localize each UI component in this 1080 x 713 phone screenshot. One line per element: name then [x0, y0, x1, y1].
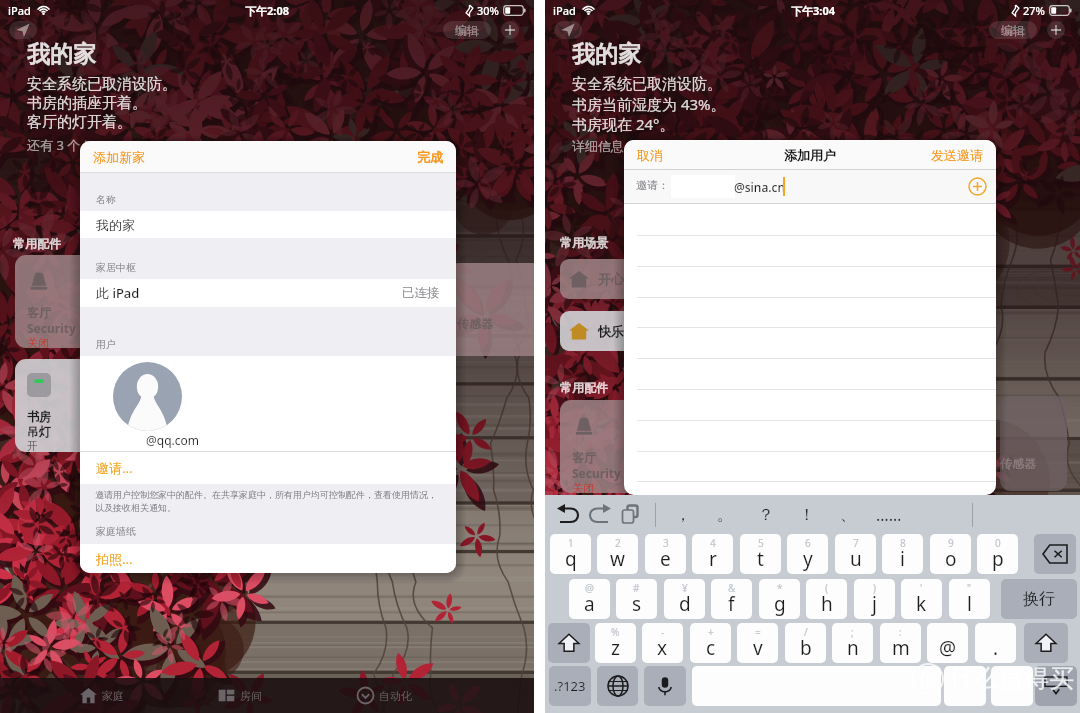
button[interactable]: ) [854, 579, 895, 619]
button[interactable]: ' [901, 579, 942, 619]
staticText: y [803, 546, 813, 572]
staticText: a [584, 591, 595, 617]
staticText: 房间 [240, 689, 262, 703]
staticText: % [611, 625, 620, 639]
staticText: 邀请用户控制您家中的配件。在共享家庭中，所有用户均可控制配件，查看使用情况，以及… [95, 489, 445, 513]
button[interactable]: . [975, 623, 1016, 663]
button[interactable]: .?123 [549, 666, 591, 706]
staticText: 0 [995, 536, 1001, 550]
button[interactable]: + [690, 623, 731, 663]
staticText: 客厅的灯开着。 [27, 113, 132, 132]
button[interactable]: Redo [588, 502, 613, 527]
button[interactable]: & [711, 579, 752, 619]
staticText: 家庭墙纸 [96, 525, 136, 538]
button[interactable]: 1 [550, 534, 591, 574]
button[interactable]: 2 [597, 534, 638, 574]
staticText: 8 [900, 536, 906, 550]
button[interactable] [991, 666, 1033, 706]
button[interactable]: Location [554, 21, 582, 39]
button[interactable]: ， [662, 499, 703, 530]
button[interactable]: / [785, 623, 826, 663]
button[interactable]: : [880, 623, 921, 663]
button[interactable]: 家庭 [80, 678, 164, 713]
button[interactable]: 完成 [417, 145, 443, 169]
staticText: 9 [948, 536, 954, 550]
button[interactable]: ？ [745, 499, 786, 530]
staticText: @ [585, 581, 594, 595]
staticText: 、 [840, 505, 856, 525]
button[interactable]: 开心… [560, 259, 676, 299]
button[interactable]: @ [569, 579, 610, 619]
button[interactable]: ( [806, 579, 847, 619]
button[interactable]: 6 [787, 534, 828, 574]
button[interactable]: * [759, 579, 800, 619]
staticText: 什么值得买 [949, 663, 1074, 694]
button[interactable]: Undo [555, 502, 580, 527]
button[interactable]: 5 [740, 534, 781, 574]
button[interactable]: Dictate [644, 666, 686, 706]
button[interactable]: " [949, 579, 990, 619]
button[interactable]: = [737, 623, 778, 663]
button[interactable] [944, 666, 986, 706]
button[interactable]: Hide keyboard [1035, 666, 1077, 706]
button[interactable]: 7 [835, 534, 876, 574]
button[interactable]: Paste [619, 502, 644, 527]
button[interactable]: 编辑 [989, 21, 1037, 39]
staticText: iPad [8, 3, 31, 18]
button[interactable]: Add [501, 21, 519, 39]
staticText: 添加用户 [784, 147, 836, 163]
staticText: j [872, 591, 877, 617]
staticText: * [777, 581, 783, 595]
button[interactable]: 传感器 [1000, 396, 1067, 491]
staticText: ， [675, 505, 691, 525]
button[interactable]: 书房 [15, 359, 119, 452]
button[interactable]: @ [927, 623, 968, 663]
button[interactable]: ¥ [664, 579, 705, 619]
staticText: 取消 [637, 147, 663, 163]
button[interactable]: 4 [692, 534, 733, 574]
button[interactable]: 换行 [1001, 579, 1077, 619]
button[interactable]: 房间 [218, 678, 302, 713]
button[interactable] [113, 362, 182, 431]
button[interactable]: 9 [930, 534, 971, 574]
button[interactable]: 客厅 [15, 255, 119, 348]
staticText: 已连接 [402, 285, 440, 301]
button[interactable]: 传感器 [447, 263, 534, 356]
button[interactable]: 添加新家 [93, 145, 145, 169]
button[interactable]: 详细信息 [572, 138, 635, 154]
button[interactable]: 8 [882, 534, 923, 574]
button[interactable]: Backspace [1034, 534, 1076, 574]
staticText: @qq.com [146, 432, 200, 448]
button[interactable]: 0 [977, 534, 1018, 574]
button[interactable]: …… [868, 499, 909, 530]
button[interactable]: Shift [548, 623, 590, 663]
button[interactable]: Add [1047, 21, 1065, 39]
button[interactable]: Add contact [968, 177, 987, 196]
button[interactable]: 拍照... [96, 550, 133, 568]
button[interactable]: Location [9, 21, 37, 39]
button[interactable]: ; [832, 623, 873, 663]
button[interactable]: 。 [704, 499, 745, 530]
button[interactable]: - [642, 623, 683, 663]
button[interactable]: # [616, 579, 657, 619]
button[interactable]: % [595, 623, 636, 663]
staticText: w [610, 546, 625, 572]
button[interactable]: 还有 3 个 [27, 136, 92, 154]
staticText: 编辑 [1001, 23, 1025, 38]
button[interactable]: 发送邀请 [931, 140, 983, 169]
button[interactable]: Shift [1024, 623, 1068, 663]
staticText: 常用场景 [560, 235, 608, 250]
button[interactable]: 邀请... [96, 459, 133, 477]
staticText: iPad [553, 3, 576, 18]
button[interactable]: 、 [827, 499, 868, 530]
button[interactable]: 3 [645, 534, 686, 574]
button[interactable]: 编辑 [443, 21, 491, 39]
button[interactable]: 快乐生活 [560, 311, 676, 351]
button[interactable]: ！ [786, 499, 827, 530]
button[interactable]: 客厅 [560, 400, 664, 493]
staticText: b [800, 635, 812, 661]
button[interactable]: 取消 [637, 140, 663, 169]
button[interactable]: 自动化 [357, 678, 441, 713]
button[interactable]: Globe [597, 666, 638, 706]
